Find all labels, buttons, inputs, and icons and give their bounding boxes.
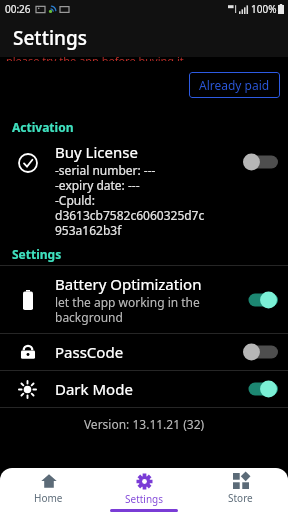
button[interactable]: PassCode (0, 334, 288, 370)
button[interactable]: Already paid (189, 72, 280, 98)
staticText: Already paid (199, 77, 270, 93)
staticText: Settings (13, 25, 87, 51)
button[interactable]: On (242, 380, 278, 398)
button[interactable]: Store (192, 468, 288, 512)
staticText: let the app working in the background (55, 294, 200, 325)
staticText: Home (34, 491, 63, 505)
button[interactable]: Off (242, 153, 278, 171)
button[interactable]: Settings (96, 468, 192, 512)
button[interactable]: On (242, 291, 278, 309)
staticText: Settings (125, 492, 164, 506)
staticText: Version: 13.11.21 (32) (0, 416, 288, 432)
button[interactable]: Home (0, 468, 96, 512)
button[interactable]: Off (242, 343, 278, 361)
staticText: Store (228, 491, 253, 505)
staticText: -serial number: --- -expiry date: --- -C… (55, 162, 205, 238)
staticText: 00:26 (5, 2, 31, 16)
staticText: Activation (12, 119, 74, 135)
button[interactable]: Buy License (0, 138, 288, 242)
staticText: please try the app before buying it. (6, 53, 187, 61)
button[interactable]: Battery Optimization (0, 266, 288, 333)
button[interactable]: Dark Mode (0, 371, 288, 407)
staticText: PassCode (55, 342, 124, 362)
staticText: Settings (12, 246, 62, 262)
staticText: Buy License (55, 142, 138, 162)
staticText: 100% (251, 2, 277, 16)
staticText: Dark Mode (55, 379, 133, 399)
staticText: Battery Optimization (55, 274, 202, 294)
